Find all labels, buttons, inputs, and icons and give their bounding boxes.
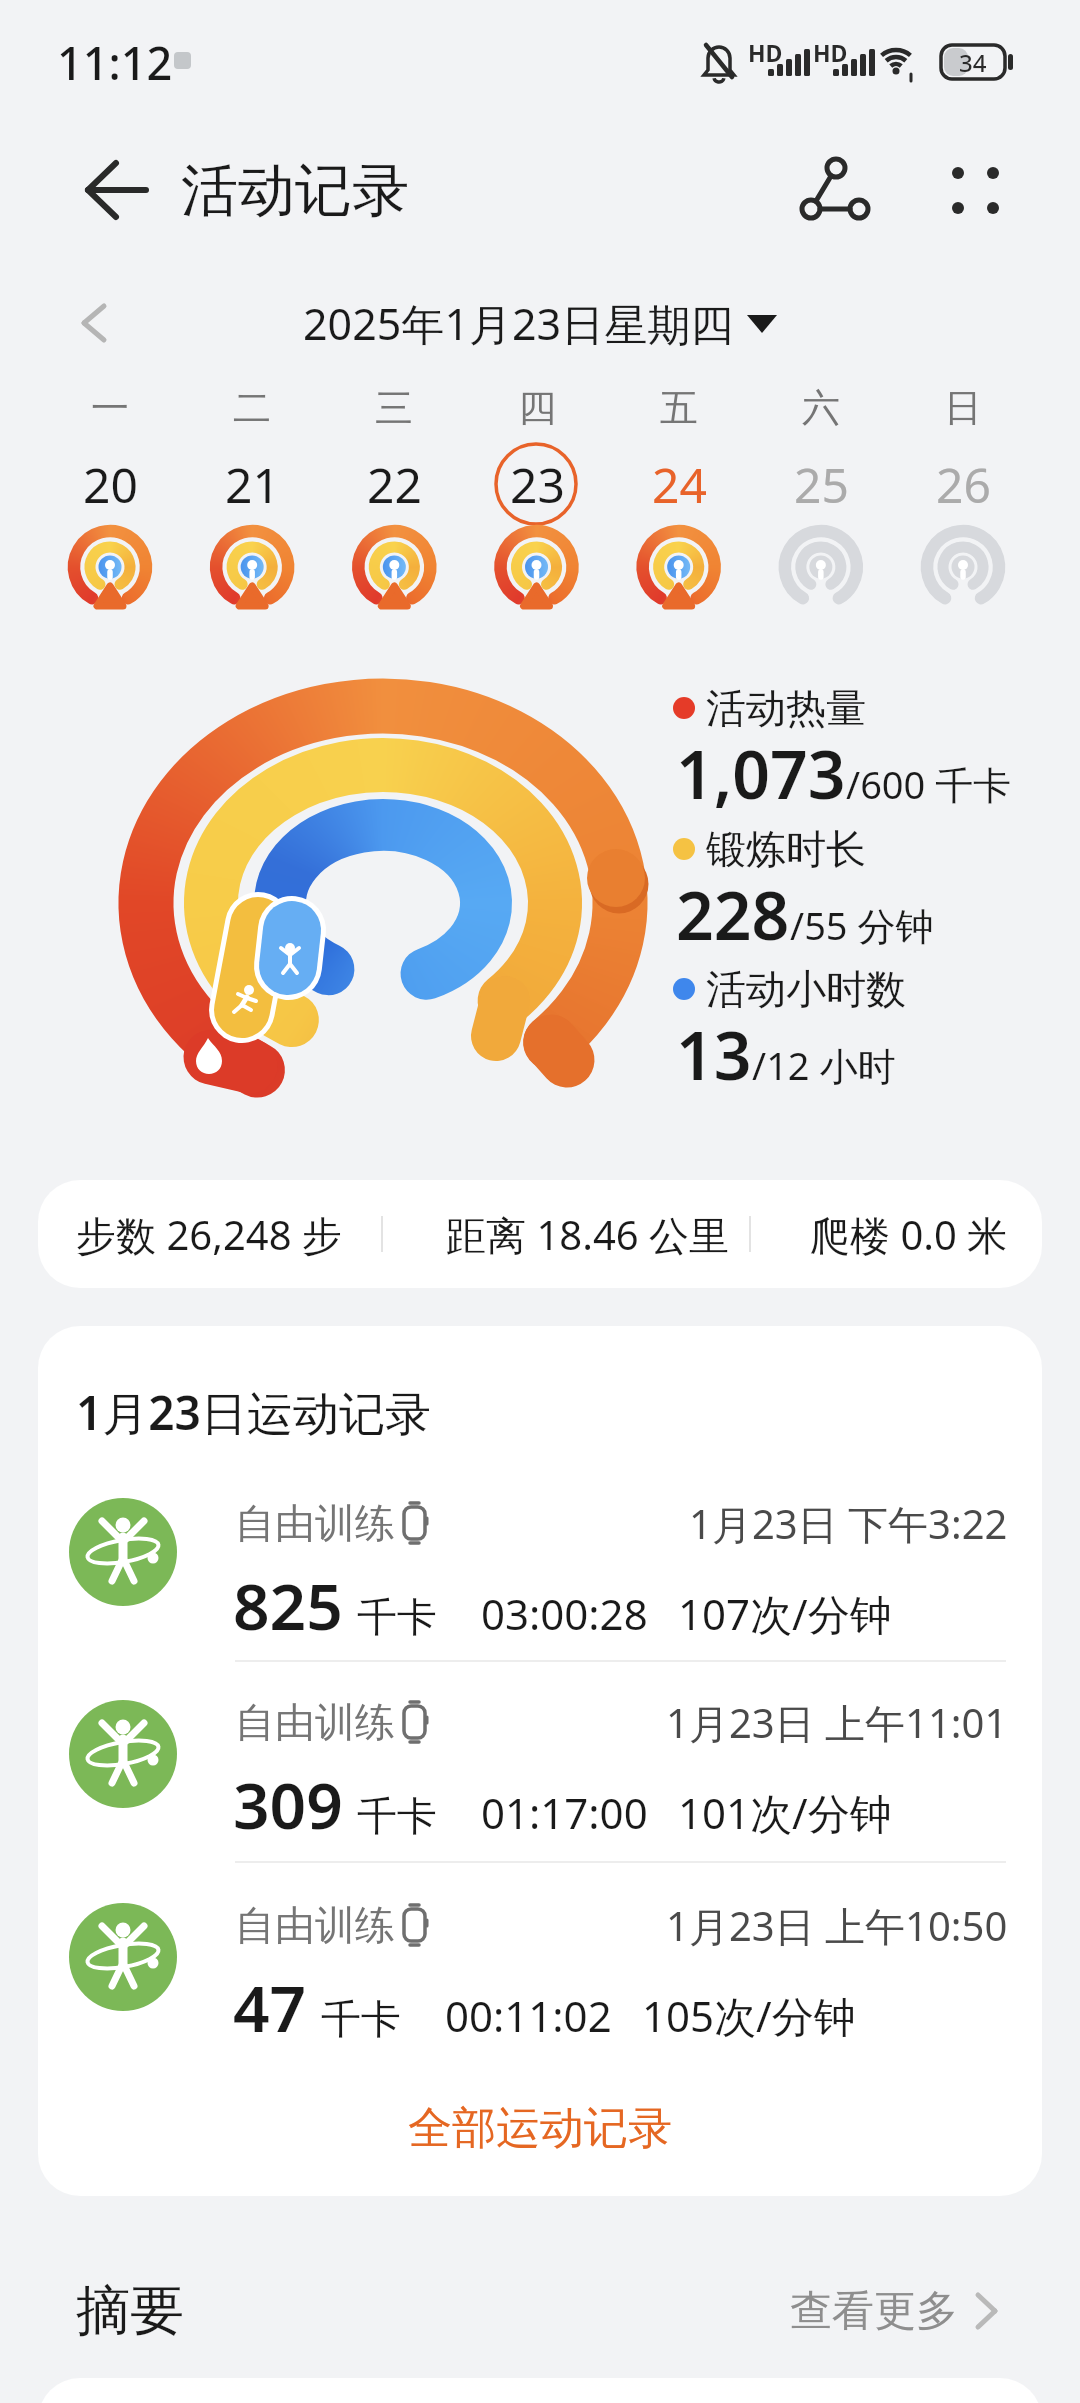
button[interactable] — [908, 440, 1018, 620]
button[interactable]: 查看更多 — [790, 2271, 1010, 2351]
button[interactable] — [339, 440, 449, 620]
button[interactable] — [60, 1462, 1020, 1652]
staticText: 26 — [936, 452, 991, 517]
staticText: HD — [813, 37, 848, 68]
button[interactable] — [790, 150, 880, 230]
staticText: 一 — [91, 384, 129, 432]
staticText: 四 — [518, 384, 556, 432]
staticText: 二 — [233, 384, 271, 432]
staticText: 825 — [233, 1562, 343, 1649]
staticText: /55 分钟 — [790, 899, 934, 951]
staticText: 千卡 — [321, 1994, 401, 2044]
staticText: 锻炼时长 — [706, 824, 866, 874]
staticText: 距离 18.46 公里 — [446, 1207, 730, 1262]
staticText: 03:00:28 — [481, 1585, 648, 1642]
staticText: 24 — [652, 452, 707, 517]
staticText: 309 — [233, 1761, 343, 1848]
staticText: /12 小时 — [752, 1039, 896, 1091]
staticText: 查看更多 — [790, 2285, 958, 2338]
staticText: 101次/分钟 — [678, 1784, 892, 1841]
staticText: 1月23日 下午3:22 — [689, 1496, 1008, 1551]
button[interactable] — [300, 290, 780, 356]
staticText: 活动小时数 — [706, 964, 906, 1014]
staticText: 47 — [233, 1964, 307, 2051]
button[interactable] — [60, 1662, 1020, 1852]
staticText: 228 — [676, 869, 790, 959]
staticText: 千卡 — [357, 1592, 437, 1642]
staticText: 1月23日 上午11:01 — [666, 1695, 1008, 1750]
button[interactable] — [624, 440, 734, 620]
staticText: 01:17:00 — [481, 1784, 648, 1841]
button[interactable] — [482, 440, 592, 620]
staticText: 全部运动记录 — [408, 2101, 672, 2156]
staticText: 摘要 — [76, 2277, 184, 2345]
staticText: 21 — [225, 452, 280, 517]
button[interactable] — [60, 155, 160, 225]
staticText: 11:12 — [57, 32, 173, 93]
staticText: 千卡 — [357, 1791, 437, 1841]
staticText: 六 — [802, 384, 840, 432]
staticText: HD — [748, 37, 783, 68]
staticText: 步数 26,248 步 — [76, 1207, 342, 1262]
staticText: 23 — [510, 452, 565, 517]
staticText: 105次/分钟 — [642, 1987, 856, 2044]
staticText: 2025年1月23日星期四 — [303, 294, 734, 353]
staticText: /600 千卡 — [846, 758, 1012, 810]
staticText: 1,073 — [676, 728, 846, 818]
staticText: 13 — [676, 1009, 752, 1099]
staticText: 00:11:02 — [445, 1987, 612, 2044]
staticText: 自由训练 — [235, 1697, 395, 1747]
staticText: 25 — [794, 452, 849, 517]
staticText: 20 — [83, 452, 138, 517]
staticText: 自由训练 — [235, 1498, 395, 1548]
staticText: 1月23日 上午10:50 — [666, 1898, 1008, 1953]
button[interactable] — [766, 440, 876, 620]
button[interactable] — [60, 1864, 1020, 2054]
staticText: 22 — [367, 452, 422, 517]
staticText: 自由训练 — [235, 1900, 395, 1950]
staticText: 1月23日运动记录 — [76, 1381, 431, 1444]
button[interactable]: 全部运动记录 — [378, 2091, 702, 2166]
staticText: 34 — [959, 46, 987, 79]
staticText: 活动热量 — [706, 683, 866, 733]
staticText: 三 — [375, 384, 413, 432]
button[interactable] — [930, 150, 1020, 230]
staticText: 活动记录 — [181, 155, 409, 227]
staticText: 日 — [944, 384, 982, 432]
button[interactable] — [55, 440, 165, 620]
staticText: 爬楼 0.0 米 — [810, 1207, 1008, 1262]
staticText: 107次/分钟 — [678, 1585, 892, 1642]
button[interactable] — [197, 440, 307, 620]
button[interactable] — [38, 1180, 1042, 1288]
staticText: 五 — [660, 384, 698, 432]
